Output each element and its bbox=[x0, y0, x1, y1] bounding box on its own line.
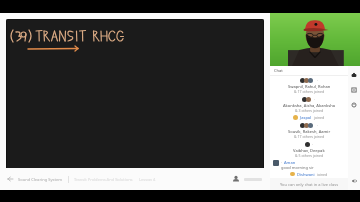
staticText: · bbox=[317, 123, 319, 128]
button[interactable]: · bbox=[273, 97, 345, 113]
staticText: You can only chat in a live class bbox=[280, 182, 339, 187]
staticText: Swapnil, Rahul, Rohan bbox=[288, 84, 331, 89]
button[interactable]: Dishwani bbox=[273, 172, 345, 176]
staticText: Chat bbox=[274, 68, 283, 73]
button[interactable]: Doubts bbox=[349, 70, 359, 80]
button[interactable]: Presenter video bbox=[270, 13, 360, 66]
button[interactable]: · bbox=[273, 142, 345, 158]
staticText: Lesson 4 bbox=[139, 177, 156, 182]
staticText: · bbox=[317, 78, 319, 83]
staticText: · bbox=[314, 97, 316, 102]
staticText: joined bbox=[314, 115, 325, 120]
staticText: Jaspal bbox=[300, 115, 312, 120]
staticText: · bbox=[281, 160, 283, 165]
staticText: good morning sir bbox=[281, 165, 314, 170]
staticText: · bbox=[312, 142, 314, 147]
button[interactable]: Chat bbox=[270, 66, 348, 75]
staticText: Aman bbox=[284, 160, 296, 165]
button[interactable]: Back bbox=[5, 174, 15, 184]
button[interactable]: · bbox=[273, 78, 345, 94]
button[interactable]: Quiz bbox=[349, 85, 359, 95]
staticText: Souvik, Rakesh, Aamir bbox=[288, 129, 331, 134]
button[interactable]: Transit Problems And Solutions bbox=[74, 177, 133, 182]
staticText: Vaibhav, Deepak bbox=[293, 148, 325, 153]
staticText: & 17 others joined bbox=[294, 134, 325, 139]
button[interactable] bbox=[6, 19, 264, 180]
staticText: & 17 others joined bbox=[294, 89, 325, 94]
staticText: Dishwani bbox=[297, 172, 315, 176]
button[interactable]: Mute bbox=[349, 176, 359, 186]
staticText: & 3 others joined bbox=[295, 108, 324, 113]
button[interactable]: Reactions bbox=[349, 100, 359, 110]
button[interactable]: Profile bbox=[230, 173, 242, 185]
button[interactable]: Sound Clearing System bbox=[18, 177, 63, 182]
button[interactable]: Jaspal bbox=[273, 115, 345, 120]
button[interactable]: · bbox=[273, 123, 345, 139]
button[interactable]: · bbox=[273, 160, 345, 170]
staticText: joined bbox=[317, 172, 328, 176]
staticText: & 5 others joined bbox=[295, 153, 324, 158]
staticText: Akanksha, Aisha, Akanksha bbox=[283, 103, 335, 108]
